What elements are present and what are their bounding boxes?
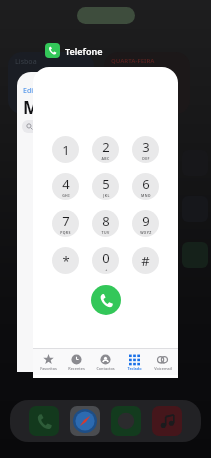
staticText: 8 xyxy=(102,212,110,230)
button[interactable]: Voicemail xyxy=(149,354,176,371)
staticText: PQRS xyxy=(60,230,71,235)
staticText: 4 xyxy=(62,175,70,193)
staticText: M xyxy=(23,96,40,119)
staticText: 9 xyxy=(142,212,150,230)
staticText: DEF xyxy=(142,156,150,161)
staticText: * xyxy=(62,252,70,270)
button[interactable]: Messages xyxy=(111,406,141,436)
button[interactable]: Phone xyxy=(29,406,59,436)
staticText: WXYZ xyxy=(140,230,152,235)
staticText: Recentes xyxy=(68,366,85,371)
button[interactable]: Contactos xyxy=(92,354,119,371)
staticText: QUARTA-FEIRA xyxy=(111,57,155,65)
staticText: 3 xyxy=(142,138,150,156)
button[interactable]: 3 xyxy=(132,136,159,163)
button[interactable]: 7 xyxy=(52,210,79,237)
staticText: 1 xyxy=(62,141,70,159)
staticText: TUV xyxy=(101,230,110,235)
staticText: 2 xyxy=(102,138,110,156)
button[interactable]: 1 xyxy=(52,136,79,163)
button[interactable]: Favoritos xyxy=(35,354,62,371)
staticText: Favoritos xyxy=(40,366,57,371)
button[interactable]: Recentes xyxy=(63,354,90,371)
staticText: Edit xyxy=(23,86,36,96)
staticText: Telefone xyxy=(65,45,103,57)
button[interactable]: * xyxy=(52,247,79,274)
staticText: 6 xyxy=(142,175,150,193)
staticText: ABC xyxy=(101,156,110,161)
button[interactable]: 2 xyxy=(92,136,119,163)
button[interactable]: Safari xyxy=(70,406,100,436)
staticText: MNO xyxy=(141,193,151,198)
button[interactable]: Music xyxy=(152,406,182,436)
button[interactable]: 8 xyxy=(92,210,119,237)
button[interactable]: Call xyxy=(91,285,121,315)
button[interactable]: 9 xyxy=(132,210,159,237)
staticText: 0 xyxy=(102,249,110,267)
button[interactable]: Teclado xyxy=(121,354,148,371)
button[interactable]: 4 xyxy=(52,173,79,200)
button[interactable]: 6 xyxy=(132,173,159,200)
staticText: Voicemail xyxy=(154,366,172,371)
staticText: Lisboa xyxy=(15,57,37,67)
button[interactable]: # xyxy=(132,247,159,274)
staticText: GHI xyxy=(62,193,70,198)
staticText: Teclado xyxy=(127,366,142,371)
staticText: Contactos xyxy=(96,366,115,371)
staticText: JKL xyxy=(103,193,110,198)
staticText: + xyxy=(105,267,108,272)
staticText: 7 xyxy=(62,212,70,230)
staticText: # xyxy=(141,252,150,270)
button[interactable]: 5 xyxy=(92,173,119,200)
staticText: 5 xyxy=(102,175,110,193)
button[interactable]: 0 xyxy=(92,247,119,274)
